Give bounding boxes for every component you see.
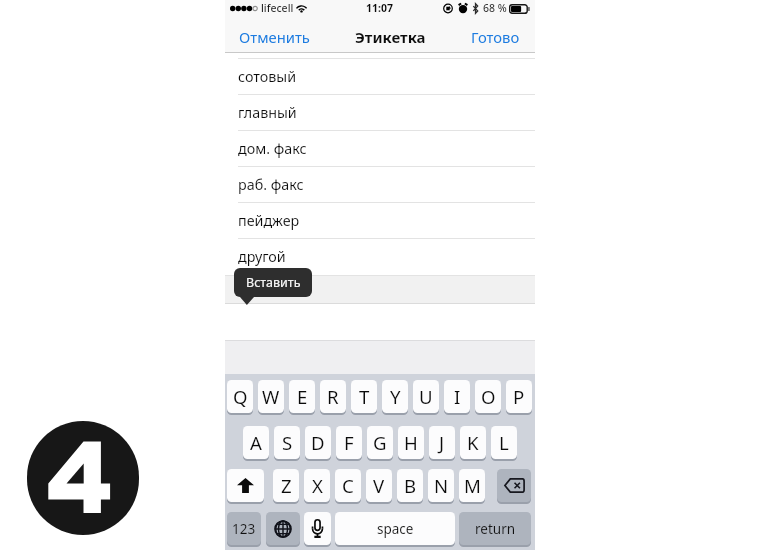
button[interactable]: U xyxy=(413,380,439,415)
staticText: lifecell xyxy=(261,1,294,15)
staticText: 123 xyxy=(232,520,256,538)
staticText: H xyxy=(404,430,418,455)
staticText: J xyxy=(439,430,445,455)
button[interactable]: раб. факс xyxy=(225,166,535,202)
button[interactable]: Y xyxy=(382,380,408,415)
button[interactable]: Shift xyxy=(227,469,264,504)
staticText: return xyxy=(475,520,516,538)
button[interactable]: P xyxy=(506,380,532,415)
button[interactable]: пейджер xyxy=(225,202,535,238)
button[interactable]: H xyxy=(398,426,424,461)
button[interactable]: return xyxy=(459,512,531,547)
staticText: главный xyxy=(238,103,297,122)
staticText: I xyxy=(454,384,461,409)
staticText: Этикетка xyxy=(355,27,426,47)
button[interactable]: V xyxy=(366,469,392,504)
button[interactable]: F xyxy=(336,426,362,461)
button[interactable]: space xyxy=(335,512,455,547)
button[interactable]: I xyxy=(444,380,470,415)
button[interactable]: Dictation xyxy=(304,512,331,547)
button[interactable]: другой xyxy=(225,238,535,274)
staticText: W xyxy=(262,384,280,409)
staticText: T xyxy=(359,384,370,409)
button[interactable]: N xyxy=(428,469,454,504)
button[interactable]: Вставить xyxy=(234,268,312,297)
staticText: O xyxy=(481,384,496,409)
staticText: Z xyxy=(281,473,292,498)
staticText: K xyxy=(467,430,479,455)
button[interactable]: Готово xyxy=(471,20,520,53)
button[interactable]: X xyxy=(304,469,330,504)
button[interactable]: L xyxy=(491,426,517,461)
staticText: L xyxy=(499,430,509,455)
button[interactable]: 123 xyxy=(227,512,261,547)
button[interactable]: K xyxy=(460,426,486,461)
button[interactable]: сотовый xyxy=(225,58,535,94)
staticText: U xyxy=(419,384,433,409)
button[interactable]: B xyxy=(397,469,423,504)
button[interactable]: G xyxy=(367,426,393,461)
button[interactable]: O xyxy=(475,380,501,415)
button[interactable]: D xyxy=(305,426,331,461)
staticText: Q xyxy=(233,384,248,409)
staticText: сотовый xyxy=(238,67,297,86)
button[interactable]: W xyxy=(258,380,284,415)
staticText: Отменить xyxy=(239,27,310,46)
button[interactable]: R xyxy=(320,380,346,415)
button[interactable]: A xyxy=(243,426,269,461)
staticText: B xyxy=(404,473,417,498)
button[interactable]: T xyxy=(351,380,377,415)
staticText: D xyxy=(311,430,325,455)
staticText: раб. факс xyxy=(238,175,304,194)
staticText: V xyxy=(373,473,385,498)
staticText: P xyxy=(513,384,525,409)
staticText: C xyxy=(342,473,354,498)
button[interactable]: Switch keyboard language xyxy=(266,512,300,547)
button[interactable]: Q xyxy=(227,380,253,415)
staticText: F xyxy=(344,430,354,455)
staticText: E xyxy=(297,384,308,409)
button[interactable]: Backspace xyxy=(497,469,531,504)
staticText: N xyxy=(434,473,449,498)
button[interactable]: Step 4 xyxy=(27,421,139,535)
staticText: S xyxy=(282,430,293,455)
staticText: другой xyxy=(238,247,286,266)
staticText: 11:07 xyxy=(366,1,393,15)
button[interactable]: J xyxy=(429,426,455,461)
button[interactable]: E xyxy=(289,380,315,415)
button[interactable]: M xyxy=(459,469,485,504)
button[interactable]: S xyxy=(274,426,300,461)
staticText: пейджер xyxy=(238,211,300,230)
button[interactable]: Отменить xyxy=(239,20,310,53)
button[interactable]: дом. факс xyxy=(225,130,535,166)
staticText: space xyxy=(377,520,414,538)
staticText: X xyxy=(312,473,323,498)
staticText: Вставить xyxy=(246,274,301,291)
button[interactable]: главный xyxy=(225,94,535,130)
staticText: R xyxy=(327,384,339,409)
staticText: Y xyxy=(390,384,401,409)
staticText: Готово xyxy=(471,27,520,46)
staticText: A xyxy=(250,430,262,455)
staticText: M xyxy=(464,473,481,498)
button[interactable]: Z xyxy=(273,469,299,504)
button[interactable]: C xyxy=(335,469,361,504)
staticText: дом. факс xyxy=(238,139,307,158)
staticText: 68 % xyxy=(483,1,507,15)
staticText: G xyxy=(373,430,387,455)
